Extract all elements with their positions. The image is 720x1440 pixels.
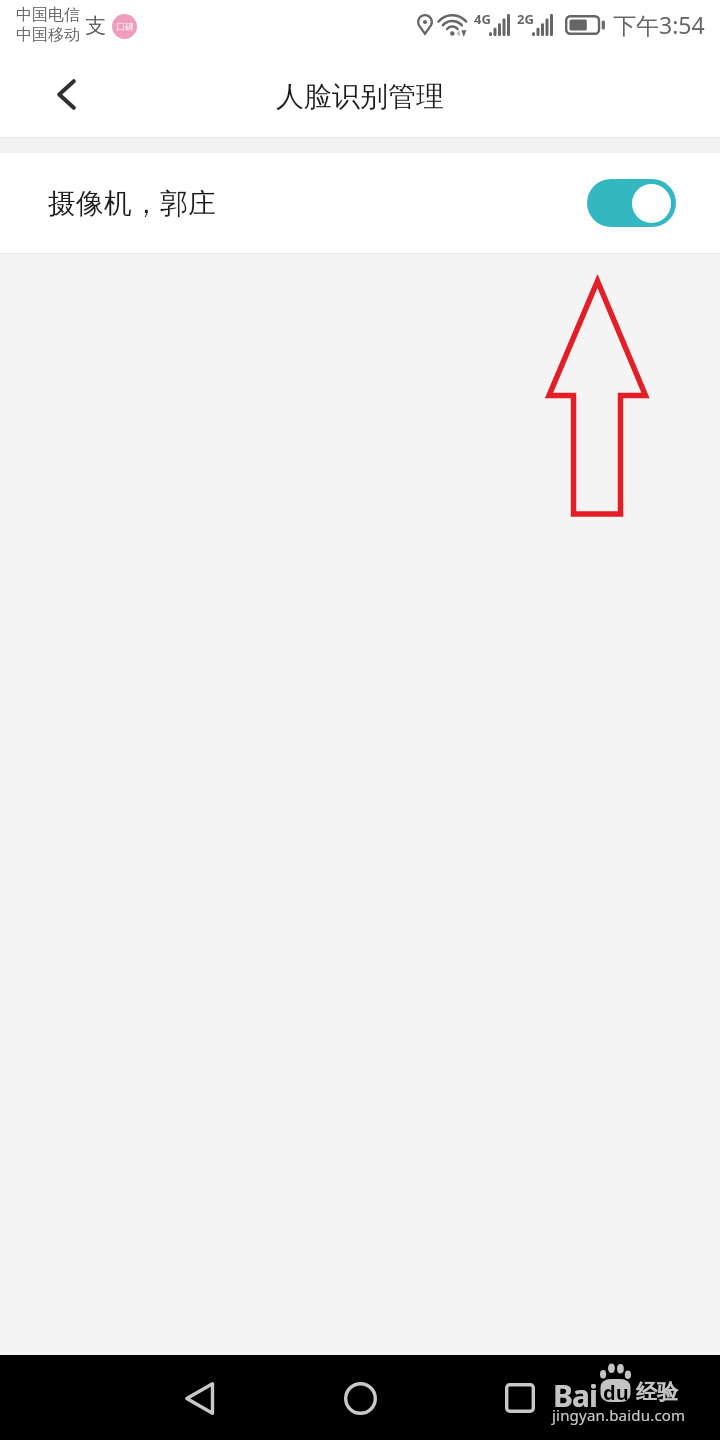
staticText: jingyan.baidu.com — [552, 1405, 686, 1425]
button[interactable]: Back — [169, 1368, 229, 1428]
staticText: Bai — [553, 1375, 597, 1416]
staticText: 2G — [517, 10, 534, 28]
staticText: 人脸识别管理 — [276, 79, 444, 114]
staticText: 经验 — [636, 1379, 678, 1405]
button[interactable]: 摄像机，郭庄 — [0, 153, 720, 253]
staticText: 4G — [474, 10, 491, 28]
staticText: 口碑 — [116, 21, 134, 32]
button[interactable]: Back — [34, 64, 98, 128]
staticText: 中国移动 — [16, 25, 80, 45]
button[interactable]: Home — [330, 1368, 390, 1428]
staticText: du — [603, 1379, 629, 1406]
button[interactable]: Recents — [490, 1368, 550, 1428]
staticText: 下午3:54 — [613, 9, 705, 40]
button[interactable]: Toggle camera — [587, 179, 676, 227]
staticText: 中国电信 — [16, 5, 80, 25]
staticText: 摄像机，郭庄 — [48, 186, 216, 221]
staticText: 支 — [85, 13, 106, 39]
